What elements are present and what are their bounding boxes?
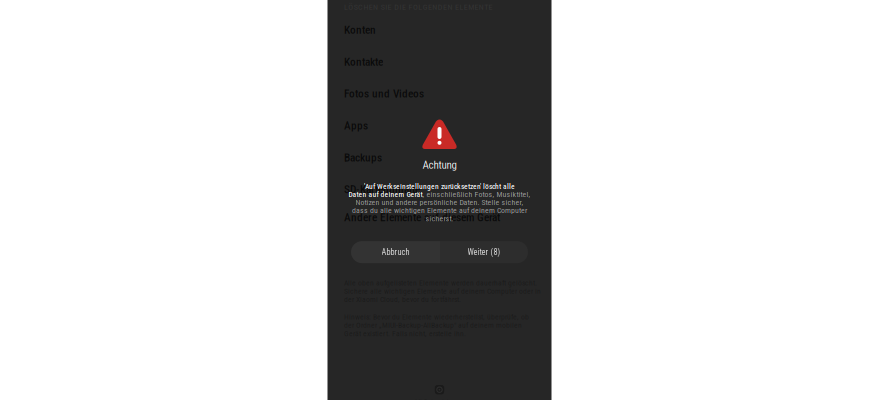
staticText: Daten auf deinem Gerät, einschließlich F… [348, 190, 530, 199]
staticText: sicherst. [425, 214, 453, 223]
button[interactable]: Weiter (8) [440, 241, 528, 263]
staticText: dass du alle wichtigen Elemente auf dein… [352, 206, 527, 215]
button[interactable]: Kontakte [344, 46, 551, 78]
staticText: Fotos und Videos [344, 87, 424, 100]
staticText: Apps [344, 119, 368, 132]
staticText: Abbruch [381, 247, 409, 257]
staticText: LÖSCHEN SIE DIE FOLGENDEN ELEMENTE [344, 2, 492, 12]
button[interactable]: Fotos und Videos [344, 78, 551, 110]
staticText: Notizen und andere persönliche Daten. St… [355, 198, 523, 207]
staticText: SD-Karteninhalte [344, 183, 420, 196]
staticText: Kontakte [344, 55, 383, 68]
staticText: 'Auf Werkseinstellungen zurücksetzen' lö… [364, 182, 515, 191]
button[interactable]: SD-Karteninhalte [344, 173, 551, 205]
button[interactable]: Backups [344, 142, 551, 173]
button[interactable]: Abbruch [351, 241, 440, 263]
button[interactable]: Konten [344, 14, 551, 46]
button[interactable]: Apps [344, 110, 551, 142]
staticText: Andere Elemente auf diesem Gerät [344, 211, 500, 224]
staticText: Backups [344, 151, 382, 164]
staticText: Konten [344, 23, 376, 37]
button[interactable]: Andere Elemente auf diesem Gerät [344, 201, 551, 233]
staticText: Weiter (8) [467, 247, 500, 257]
staticText: Achtung [422, 158, 456, 171]
